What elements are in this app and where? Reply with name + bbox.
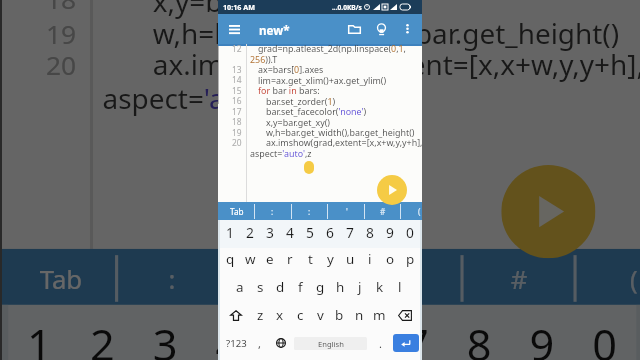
staticText: 5 [306,223,314,242]
button[interactable]: 7 [340,219,360,245]
button[interactable]: ?123 [223,330,249,356]
button[interactable]: 0 [400,219,420,245]
staticText: x,y=bar.get_xy() [153,0,357,19]
button[interactable]: , [252,330,266,356]
button[interactable]: : [234,249,344,305]
button[interactable]: Tab [2,249,118,305]
button[interactable]: : [292,202,327,220]
button[interactable]: 4 [197,302,259,360]
button[interactable]: Change keyboard language [273,330,289,356]
button[interactable]: b [329,302,349,328]
staticText: 0 [406,223,414,242]
button[interactable]: Shift [225,302,247,328]
button[interactable]: ( [402,202,437,220]
button[interactable]: l [390,274,410,300]
button[interactable]: 6 [320,219,340,245]
button[interactable]: v [310,302,330,328]
staticText: lim=ax.get_xlim()+ax.get_ylim() [258,74,387,86]
staticText: English [318,339,344,349]
button[interactable]: Run [501,165,595,258]
staticText: ( [630,261,639,296]
button[interactable]: 9 [511,302,573,360]
button[interactable]: 8 [360,219,380,245]
button[interactable]: Tab [218,202,255,220]
staticText: 14 [232,74,242,85]
button[interactable]: . [373,330,387,356]
button[interactable]: g [310,274,330,300]
button[interactable]: n [349,302,369,328]
staticText: ax=bars[0].axes [258,63,324,75]
staticText: 16 [232,95,242,106]
staticText: 20 [46,47,77,81]
staticText: r [287,250,293,268]
button[interactable]: More options [398,14,416,44]
button[interactable]: h [330,274,350,300]
button[interactable]: o [380,246,400,272]
button[interactable]: p [400,246,420,272]
button[interactable]: 1 [220,219,240,245]
button[interactable]: 8 [448,302,511,360]
button[interactable]: i [360,246,380,272]
button[interactable]: # [365,202,400,220]
button[interactable]: 4 [280,219,300,245]
staticText: 5 [278,314,303,360]
staticText: ...0.0KB/s [332,3,362,12]
button[interactable]: w [240,246,260,272]
button[interactable]: d [270,274,290,300]
button[interactable]: k [370,274,390,300]
button[interactable]: c [290,302,310,328]
button[interactable]: u [340,246,360,272]
button[interactable]: y [320,246,340,272]
button[interactable]: 9 [380,219,400,245]
button[interactable]: x [270,302,290,328]
button[interactable]: a [230,274,250,300]
staticText: # [511,261,529,296]
button[interactable]: j [350,274,370,300]
staticText: ax.imshow(grad,extent=[x,x+w,y,y+h], [153,44,640,81]
button[interactable]: 2 [240,219,260,245]
staticText: j [358,278,362,296]
staticText: k [376,278,384,296]
button[interactable]: : [118,249,228,305]
staticText: 20 [232,137,242,148]
button[interactable]: 1 [8,302,71,360]
staticText: bar.set_facecolor('none') [266,105,367,117]
button[interactable]: m [369,302,389,328]
staticText: 0 [592,314,617,360]
button[interactable]: 3 [260,219,280,245]
button[interactable]: : [255,202,290,220]
button[interactable]: f [290,274,310,300]
button[interactable]: ' [329,202,364,220]
staticText: ( [418,206,421,217]
staticText: s [257,278,264,296]
button[interactable]: Tips and tricks [372,14,390,44]
button[interactable]: Open navigation menu [222,14,247,44]
staticText: m [373,306,386,324]
staticText: 18 [46,0,77,16]
staticText: 19 [46,16,77,50]
button[interactable]: ( [580,249,640,305]
button[interactable]: 7 [385,302,448,360]
button[interactable]: 5 [300,219,320,245]
staticText: 6 [326,223,334,242]
button[interactable]: t [300,246,320,272]
staticText: w [245,250,256,268]
button[interactable]: z [250,302,270,328]
button[interactable]: Open file [344,14,364,44]
button[interactable]: 0 [573,302,636,360]
button[interactable]: s [250,274,270,300]
button[interactable]: ' [350,249,460,305]
staticText: Tab [40,261,84,296]
button[interactable]: q [220,246,240,272]
button[interactable]: r [280,246,300,272]
button[interactable]: Delete [393,302,417,328]
button[interactable]: Enter [393,334,419,352]
button[interactable]: # [464,249,573,305]
button[interactable]: 2 [71,302,134,360]
button[interactable]: Run [377,175,407,205]
button[interactable]: 6 [322,302,385,360]
button[interactable]: 5 [259,302,322,360]
button[interactable]: 3 [134,302,197,360]
button[interactable]: e [260,246,280,272]
button[interactable]: English [294,337,367,350]
